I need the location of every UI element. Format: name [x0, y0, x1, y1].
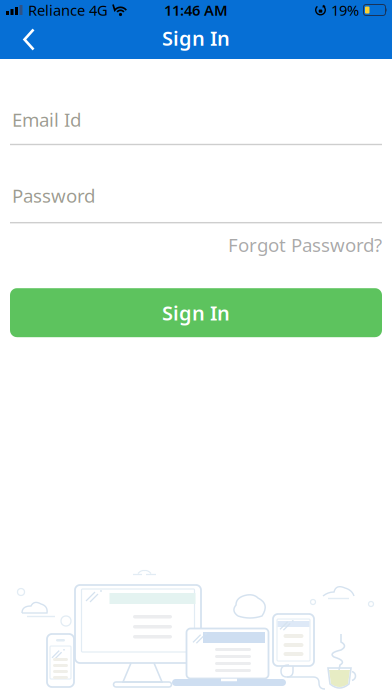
staticText: Reliance 4G [28, 0, 108, 20]
button[interactable]: Forgot Password? [228, 232, 382, 257]
staticText: Password [12, 183, 95, 208]
staticText: 11:46 AM [164, 0, 228, 20]
button[interactable]: Sign In [10, 288, 382, 337]
staticText: 19% [331, 0, 359, 20]
textField[interactable]: Password [12, 183, 382, 208]
button[interactable]: Back [0, 20, 35, 58]
staticText: Sign In [162, 25, 230, 51]
staticText: Forgot Password? [228, 232, 382, 257]
staticText: Email Id [12, 107, 81, 132]
staticText: Sign In [162, 299, 230, 326]
textField[interactable]: Email Id [12, 107, 382, 132]
